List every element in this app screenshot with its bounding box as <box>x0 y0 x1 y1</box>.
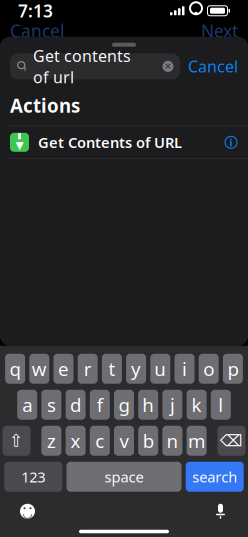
staticText: j <box>170 392 175 417</box>
button[interactable]: e <box>53 354 73 384</box>
button[interactable]: p <box>223 354 243 384</box>
staticText: d <box>70 392 81 417</box>
button[interactable]: a <box>17 390 37 420</box>
button[interactable]: f <box>90 390 110 420</box>
staticText: h <box>142 392 154 417</box>
staticText: ⇧ <box>9 431 24 451</box>
button[interactable]: n <box>162 426 182 456</box>
staticText: x <box>71 428 81 453</box>
staticText: t <box>108 356 115 381</box>
staticText: n <box>166 428 178 453</box>
button[interactable]: b <box>138 426 158 456</box>
staticText: m <box>188 428 205 453</box>
button[interactable]: d <box>66 390 86 420</box>
button[interactable]: l <box>211 390 231 420</box>
staticText: search <box>192 467 237 486</box>
staticText: p <box>227 356 238 381</box>
button[interactable]: search <box>186 462 244 492</box>
button[interactable]: z <box>41 426 61 456</box>
staticText: u <box>154 356 166 381</box>
button[interactable]: y <box>126 354 146 384</box>
staticText: 7:13 <box>18 0 53 22</box>
staticText: q <box>10 356 21 381</box>
staticText: Get contents of url <box>33 45 131 88</box>
staticText: g <box>118 392 129 417</box>
staticText: ⌫ <box>220 432 243 450</box>
staticText: b <box>143 428 154 453</box>
staticText: z <box>47 428 56 453</box>
button[interactable]: v <box>114 426 134 456</box>
button[interactable]: j <box>162 390 182 420</box>
button[interactable]: Cancel <box>188 52 238 81</box>
staticText: Get Contents of URL <box>38 132 182 152</box>
staticText: i <box>182 356 187 381</box>
staticText: a <box>22 392 32 417</box>
button[interactable]: ▼ <box>0 126 248 158</box>
button[interactable]: w <box>29 354 49 384</box>
button[interactable]: k <box>187 390 207 420</box>
staticText: Actions <box>10 93 80 118</box>
staticText: c <box>95 428 104 453</box>
staticText: y <box>131 356 141 381</box>
button[interactable]: m <box>187 426 207 456</box>
staticText: v <box>119 428 128 453</box>
staticText: ✕ <box>164 61 172 72</box>
staticText: s <box>47 392 56 417</box>
button[interactable]: t <box>102 354 122 384</box>
button[interactable]: g <box>114 390 134 420</box>
button[interactable]: space <box>66 462 181 492</box>
button[interactable]: i <box>174 354 194 384</box>
button[interactable]: h <box>138 390 158 420</box>
staticText: ▼ <box>15 139 23 151</box>
button[interactable]: Clear text <box>159 57 177 75</box>
staticText: r <box>84 356 92 381</box>
staticText: f <box>97 392 103 417</box>
staticText: Cancel <box>10 19 64 42</box>
staticText: l <box>218 392 223 417</box>
staticText: space <box>104 467 143 486</box>
button[interactable]: r <box>78 354 98 384</box>
button[interactable]: Emoji keyboard <box>14 498 41 525</box>
button[interactable]: u <box>150 354 170 384</box>
button[interactable]: q <box>5 354 25 384</box>
staticText: 123 <box>21 467 45 486</box>
button[interactable]: 123 <box>4 462 62 492</box>
button[interactable]: o <box>199 354 219 384</box>
staticText: w <box>32 356 47 381</box>
staticText: Cancel <box>188 56 238 77</box>
staticText: ◡ <box>23 506 32 519</box>
button[interactable]: Shift <box>2 426 30 456</box>
button[interactable]: x <box>66 426 86 456</box>
button[interactable]: c <box>90 426 110 456</box>
staticText: Next <box>201 19 238 42</box>
staticText: k <box>192 392 202 417</box>
button[interactable]: Dictate <box>207 497 234 526</box>
button[interactable]: s <box>41 390 61 420</box>
staticText: o <box>203 356 214 381</box>
staticText: e <box>58 356 69 381</box>
button[interactable]: Delete <box>217 426 245 456</box>
staticText: i <box>229 135 232 149</box>
